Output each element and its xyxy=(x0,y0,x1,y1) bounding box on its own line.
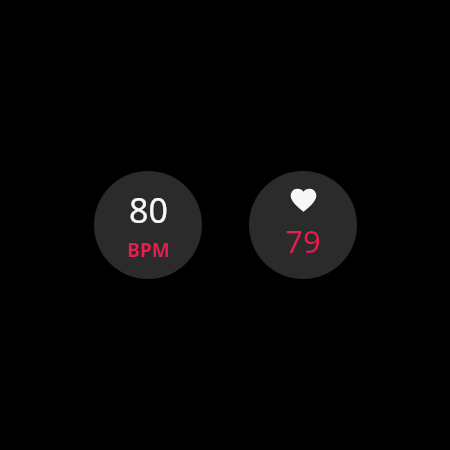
button[interactable]: 80 xyxy=(94,171,202,279)
staticText: 80 xyxy=(129,187,168,233)
other: Heart rate xyxy=(291,188,316,211)
staticText: BPM xyxy=(127,237,170,263)
button[interactable]: Heart rate xyxy=(249,171,357,279)
staticText: 79 xyxy=(285,220,321,262)
